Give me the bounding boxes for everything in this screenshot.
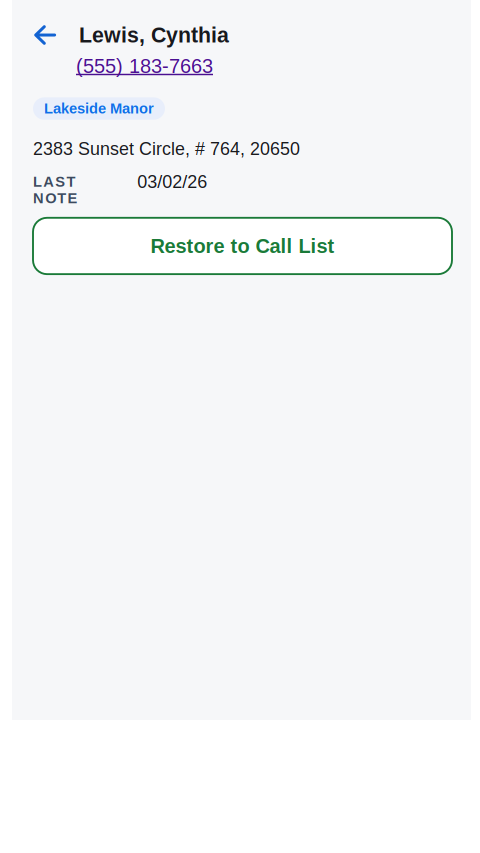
staticText: Lakeside Manor [44, 100, 154, 117]
staticText: 2383 Sunset Circle, # 764, 20650 [33, 139, 300, 159]
staticText: Restore to Call List [150, 235, 334, 257]
button[interactable]: Lakeside Manor [33, 97, 165, 120]
button[interactable]: Restore to Call List [33, 218, 452, 274]
button[interactable]: (555) 183-7663 [76, 55, 213, 77]
staticText: Lewis, Cynthia [79, 23, 229, 47]
staticText: LAST NOTE [33, 174, 126, 190]
staticText: (555) 183-7663 [76, 55, 213, 77]
staticText: 03/02/26 [137, 172, 207, 192]
button[interactable]: Back [30, 19, 60, 51]
